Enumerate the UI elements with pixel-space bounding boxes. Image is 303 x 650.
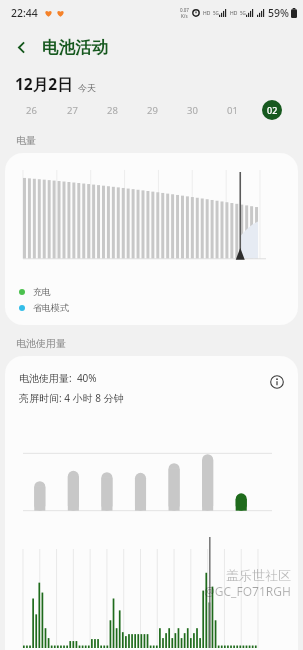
staticText: 27 bbox=[67, 104, 78, 117]
staticText: HD bbox=[230, 10, 238, 17]
staticText: 02 bbox=[267, 104, 278, 116]
button[interactable]: 30 bbox=[172, 94, 212, 126]
button[interactable]: 26 bbox=[11, 94, 52, 126]
staticText: @GC_FO71RGH bbox=[204, 583, 291, 599]
staticText: 01 bbox=[227, 104, 238, 117]
staticText: 电池使用量 bbox=[16, 337, 66, 350]
staticText: 59% bbox=[268, 6, 289, 20]
button[interactable]: 01 bbox=[212, 94, 252, 126]
staticText: 22:44 bbox=[11, 6, 38, 20]
button[interactable]: 信息 bbox=[266, 371, 288, 393]
staticText: K/s bbox=[181, 13, 188, 19]
button[interactable]: 02 bbox=[252, 94, 292, 126]
staticText: 30 bbox=[187, 104, 198, 117]
staticText: 电量 bbox=[16, 134, 36, 147]
button[interactable]: 充电 bbox=[5, 153, 298, 325]
staticText: 亮屏时间: 4 小时 8 分钟 bbox=[19, 391, 124, 405]
staticText: 电池使用量: 40% bbox=[19, 371, 97, 385]
staticText: 0.07 bbox=[180, 7, 189, 13]
staticText: 盖乐世社区 bbox=[226, 567, 291, 583]
staticText: 26 bbox=[26, 104, 37, 117]
staticText: 29 bbox=[147, 104, 158, 117]
button[interactable]: 28 bbox=[92, 94, 132, 126]
staticText: 省电模式 bbox=[33, 302, 69, 313]
staticText: 5G bbox=[213, 10, 219, 16]
staticText: 12月2日 bbox=[15, 73, 73, 94]
button[interactable]: 27 bbox=[52, 94, 92, 126]
button[interactable]: 返回 bbox=[5, 31, 37, 63]
staticText: 5G bbox=[240, 10, 246, 16]
staticText: HD bbox=[203, 10, 211, 17]
staticText: 今天 bbox=[78, 82, 96, 93]
button[interactable]: 29 bbox=[132, 94, 172, 126]
staticText: 28 bbox=[107, 104, 118, 117]
staticText: 充电 bbox=[33, 286, 51, 297]
staticText: 电池活动 bbox=[42, 37, 108, 58]
